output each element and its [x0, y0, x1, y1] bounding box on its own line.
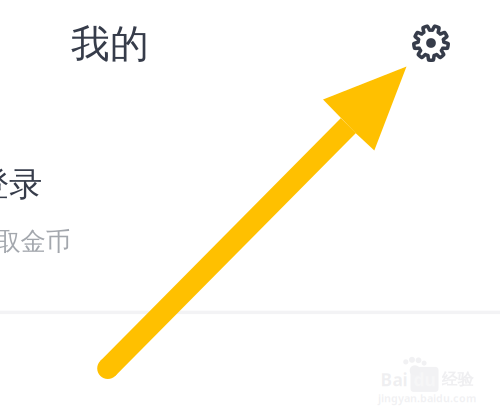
- button[interactable]: 设置: [403, 15, 459, 71]
- staticText: 我的: [71, 20, 149, 68]
- staticText: jingyan.baidu.com: [378, 391, 476, 405]
- staticText: Bai: [380, 368, 407, 391]
- staticText: 经验: [441, 370, 473, 389]
- staticText: 点击登录: [0, 164, 42, 205]
- staticText: 登录领取金币: [0, 226, 70, 257]
- button[interactable]: 点击登录: [0, 150, 300, 271]
